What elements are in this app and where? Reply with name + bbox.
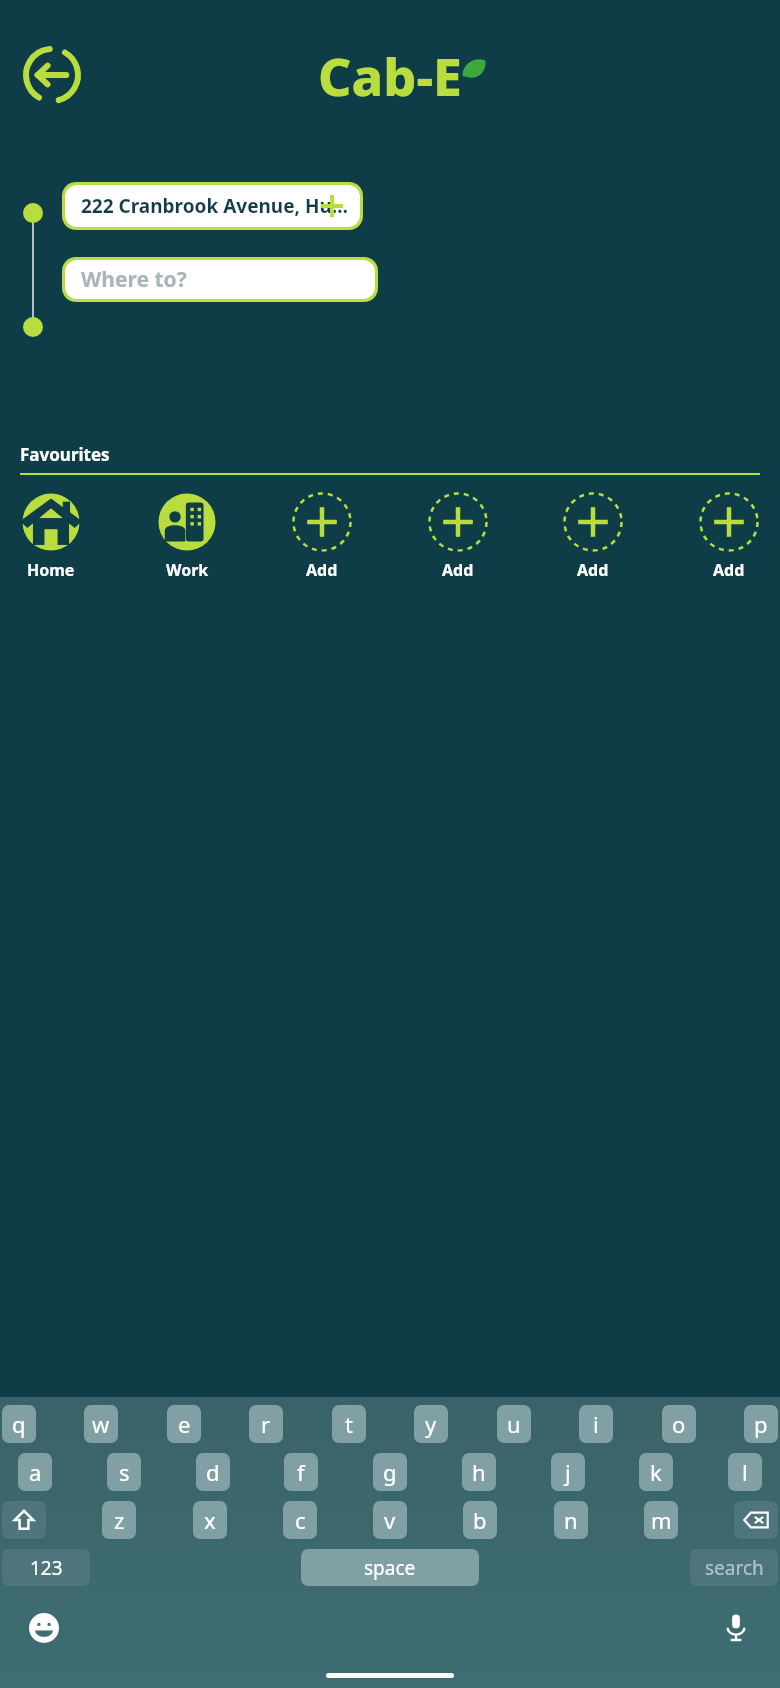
staticText: Add — [577, 559, 609, 581]
button[interactable]: key — [734, 1501, 778, 1539]
button[interactable]: t — [332, 1405, 366, 1443]
staticText: u — [507, 1409, 521, 1439]
button[interactable]: 222 Cranbrook Avenue, Hull,... — [65, 185, 360, 227]
staticText: w — [92, 1409, 110, 1439]
button[interactable]: m — [644, 1501, 678, 1539]
button[interactable]: Add — [698, 491, 760, 581]
staticText: Where to? — [81, 265, 187, 294]
button[interactable]: Add stop — [318, 192, 346, 220]
staticText: f — [297, 1457, 305, 1487]
button[interactable]: o — [662, 1405, 696, 1443]
button[interactable]: Add — [427, 491, 489, 581]
button[interactable]: e — [167, 1405, 201, 1443]
staticText: l — [742, 1457, 748, 1487]
button[interactable]: Home — [20, 491, 82, 581]
button[interactable]: space — [301, 1549, 479, 1586]
button[interactable]: Add — [562, 491, 624, 581]
staticText: Home — [27, 559, 75, 581]
staticText: m — [651, 1505, 672, 1535]
staticText: d — [206, 1457, 220, 1487]
button[interactable]: Voice input — [718, 1610, 754, 1646]
button[interactable]: v — [373, 1501, 407, 1539]
staticText: y — [425, 1409, 437, 1439]
staticText: Cab-E — [318, 40, 462, 111]
staticText: Work — [166, 559, 209, 581]
staticText: j — [565, 1457, 571, 1487]
staticText: 222 Cranbrook Avenue, Hull,... — [81, 193, 350, 219]
staticText: b — [473, 1505, 487, 1535]
staticText: s — [119, 1457, 130, 1487]
button[interactable]: Emoji — [26, 1610, 62, 1646]
button[interactable]: Where to? — [65, 260, 375, 299]
staticText: v — [384, 1505, 396, 1535]
button[interactable]: q — [2, 1405, 36, 1443]
staticText: Add — [306, 559, 338, 581]
staticText: c — [295, 1505, 306, 1535]
button[interactable]: r — [249, 1405, 283, 1443]
button[interactable]: d — [196, 1453, 230, 1491]
button[interactable]: search — [690, 1549, 778, 1586]
button[interactable]: j — [551, 1453, 585, 1491]
staticText: n — [564, 1505, 578, 1535]
button[interactable]: Add — [291, 491, 353, 581]
button[interactable]: c — [283, 1501, 317, 1539]
staticText: k — [650, 1457, 662, 1487]
button[interactable]: s — [107, 1453, 141, 1491]
staticText: Add — [713, 559, 745, 581]
staticText: space — [364, 1555, 416, 1581]
button[interactable]: f — [284, 1453, 318, 1491]
staticText: o — [672, 1409, 686, 1439]
staticText: p — [754, 1409, 768, 1439]
staticText: 123 — [30, 1555, 63, 1581]
staticText: t — [345, 1409, 353, 1439]
staticText: Favourites — [20, 443, 110, 466]
button[interactable]: Work — [156, 491, 218, 581]
button[interactable]: k — [639, 1453, 673, 1491]
button[interactable]: u — [497, 1405, 531, 1443]
staticText: r — [261, 1409, 271, 1439]
staticText: Add — [442, 559, 474, 581]
button[interactable]: a — [18, 1453, 52, 1491]
staticText: i — [593, 1409, 599, 1439]
staticText: z — [114, 1505, 125, 1535]
button[interactable]: key — [2, 1501, 46, 1539]
button[interactable]: b — [463, 1501, 497, 1539]
staticText: search — [705, 1555, 764, 1581]
staticText: x — [204, 1505, 216, 1535]
staticText: q — [12, 1409, 26, 1439]
button[interactable]: i — [579, 1405, 613, 1443]
button[interactable]: x — [193, 1501, 227, 1539]
staticText: g — [383, 1457, 397, 1487]
staticText: e — [178, 1409, 191, 1439]
button[interactable]: 123 — [2, 1549, 90, 1586]
button[interactable]: w — [84, 1405, 118, 1443]
button[interactable]: g — [373, 1453, 407, 1491]
button[interactable]: Back — [18, 41, 86, 109]
button[interactable]: y — [414, 1405, 448, 1443]
button[interactable]: n — [554, 1501, 588, 1539]
button[interactable]: h — [462, 1453, 496, 1491]
button[interactable]: p — [744, 1405, 778, 1443]
staticText: a — [29, 1457, 42, 1487]
staticText: h — [472, 1457, 486, 1487]
button[interactable]: l — [728, 1453, 762, 1491]
button[interactable]: z — [102, 1501, 136, 1539]
